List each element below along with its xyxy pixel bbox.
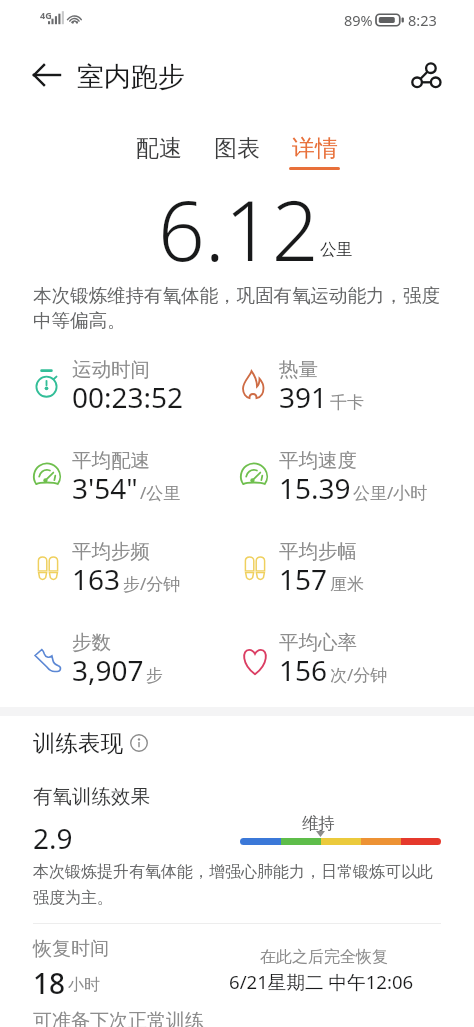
staticText: 平均心率 [279, 630, 357, 655]
staticText: 3,907 [72, 651, 144, 689]
button[interactable]: 平均心率 [240, 624, 445, 686]
staticText: 本次锻炼维持有氧体能，巩固有氧运动能力，强度中等偏高。 [33, 284, 446, 333]
staticText: /公里 [140, 481, 181, 504]
staticText: 391 [279, 378, 328, 416]
staticText: 详情 [292, 134, 338, 163]
staticText: 公里 [320, 239, 353, 260]
button[interactable]: 平均步频 [33, 533, 238, 595]
staticText: 15.39 [279, 469, 351, 507]
staticText: 配速 [136, 134, 182, 163]
staticText: 次/分钟 [330, 663, 388, 686]
button[interactable]: 配速 [125, 130, 193, 176]
staticText: 8:23 [408, 10, 437, 30]
staticText: 厘米 [330, 574, 364, 595]
staticText: 步/分钟 [123, 572, 181, 595]
staticText: 6.12 [158, 173, 319, 285]
staticText: 公里/小时 [353, 481, 428, 504]
staticText: 平均步幅 [279, 539, 357, 564]
button[interactable]: 热量 [240, 351, 445, 413]
staticText: 4G [40, 9, 52, 21]
staticText: 平均速度 [279, 448, 357, 473]
staticText: 室内跑步 [77, 60, 185, 94]
staticText: 运动时间 [72, 357, 150, 382]
button[interactable]: Share [410, 59, 444, 93]
staticText: 千卡 [330, 392, 364, 413]
staticText: 维持 [302, 813, 335, 834]
button[interactable]: 图表 [203, 130, 271, 176]
staticText: 训练表现 [33, 729, 123, 757]
staticText: 本次锻炼提升有氧体能，增强心肺能力，日常锻炼可以此强度为主。 [33, 862, 444, 908]
staticText: 在此之后完全恢复 [260, 947, 388, 967]
staticText: 2.9 [33, 819, 73, 857]
button[interactable]: 平均步幅 [240, 533, 445, 595]
button[interactable]: 运动时间 [33, 351, 238, 413]
staticText: 图表 [214, 134, 260, 163]
staticText: 18 [33, 964, 66, 1002]
staticText: 平均步频 [72, 539, 150, 564]
staticText: 恢复时间 [33, 937, 109, 961]
staticText: 157 [279, 560, 328, 598]
staticText: 89% [344, 10, 373, 30]
staticText: 3'54" [72, 469, 138, 507]
staticText: 平均配速 [72, 448, 150, 473]
button[interactable]: 平均速度 [240, 442, 445, 504]
staticText: 6/21星期二 中午12:06 [229, 969, 414, 994]
staticText: 小时 [68, 975, 100, 995]
button[interactable]: Back [26, 59, 60, 91]
button[interactable]: 平均配速 [33, 442, 238, 504]
staticText: 有氧训练效果 [33, 784, 150, 809]
staticText: 步数 [72, 630, 111, 655]
staticText: 163 [72, 560, 121, 598]
staticText: 156 [279, 651, 328, 689]
staticText: 热量 [279, 357, 318, 382]
button[interactable]: 步数 [33, 624, 238, 686]
button[interactable]: 详情 [281, 130, 349, 176]
staticText: 00:23:52 [72, 378, 184, 416]
staticText: 步 [146, 665, 163, 686]
staticText: 可准备下次正常训练 [33, 1009, 204, 1027]
